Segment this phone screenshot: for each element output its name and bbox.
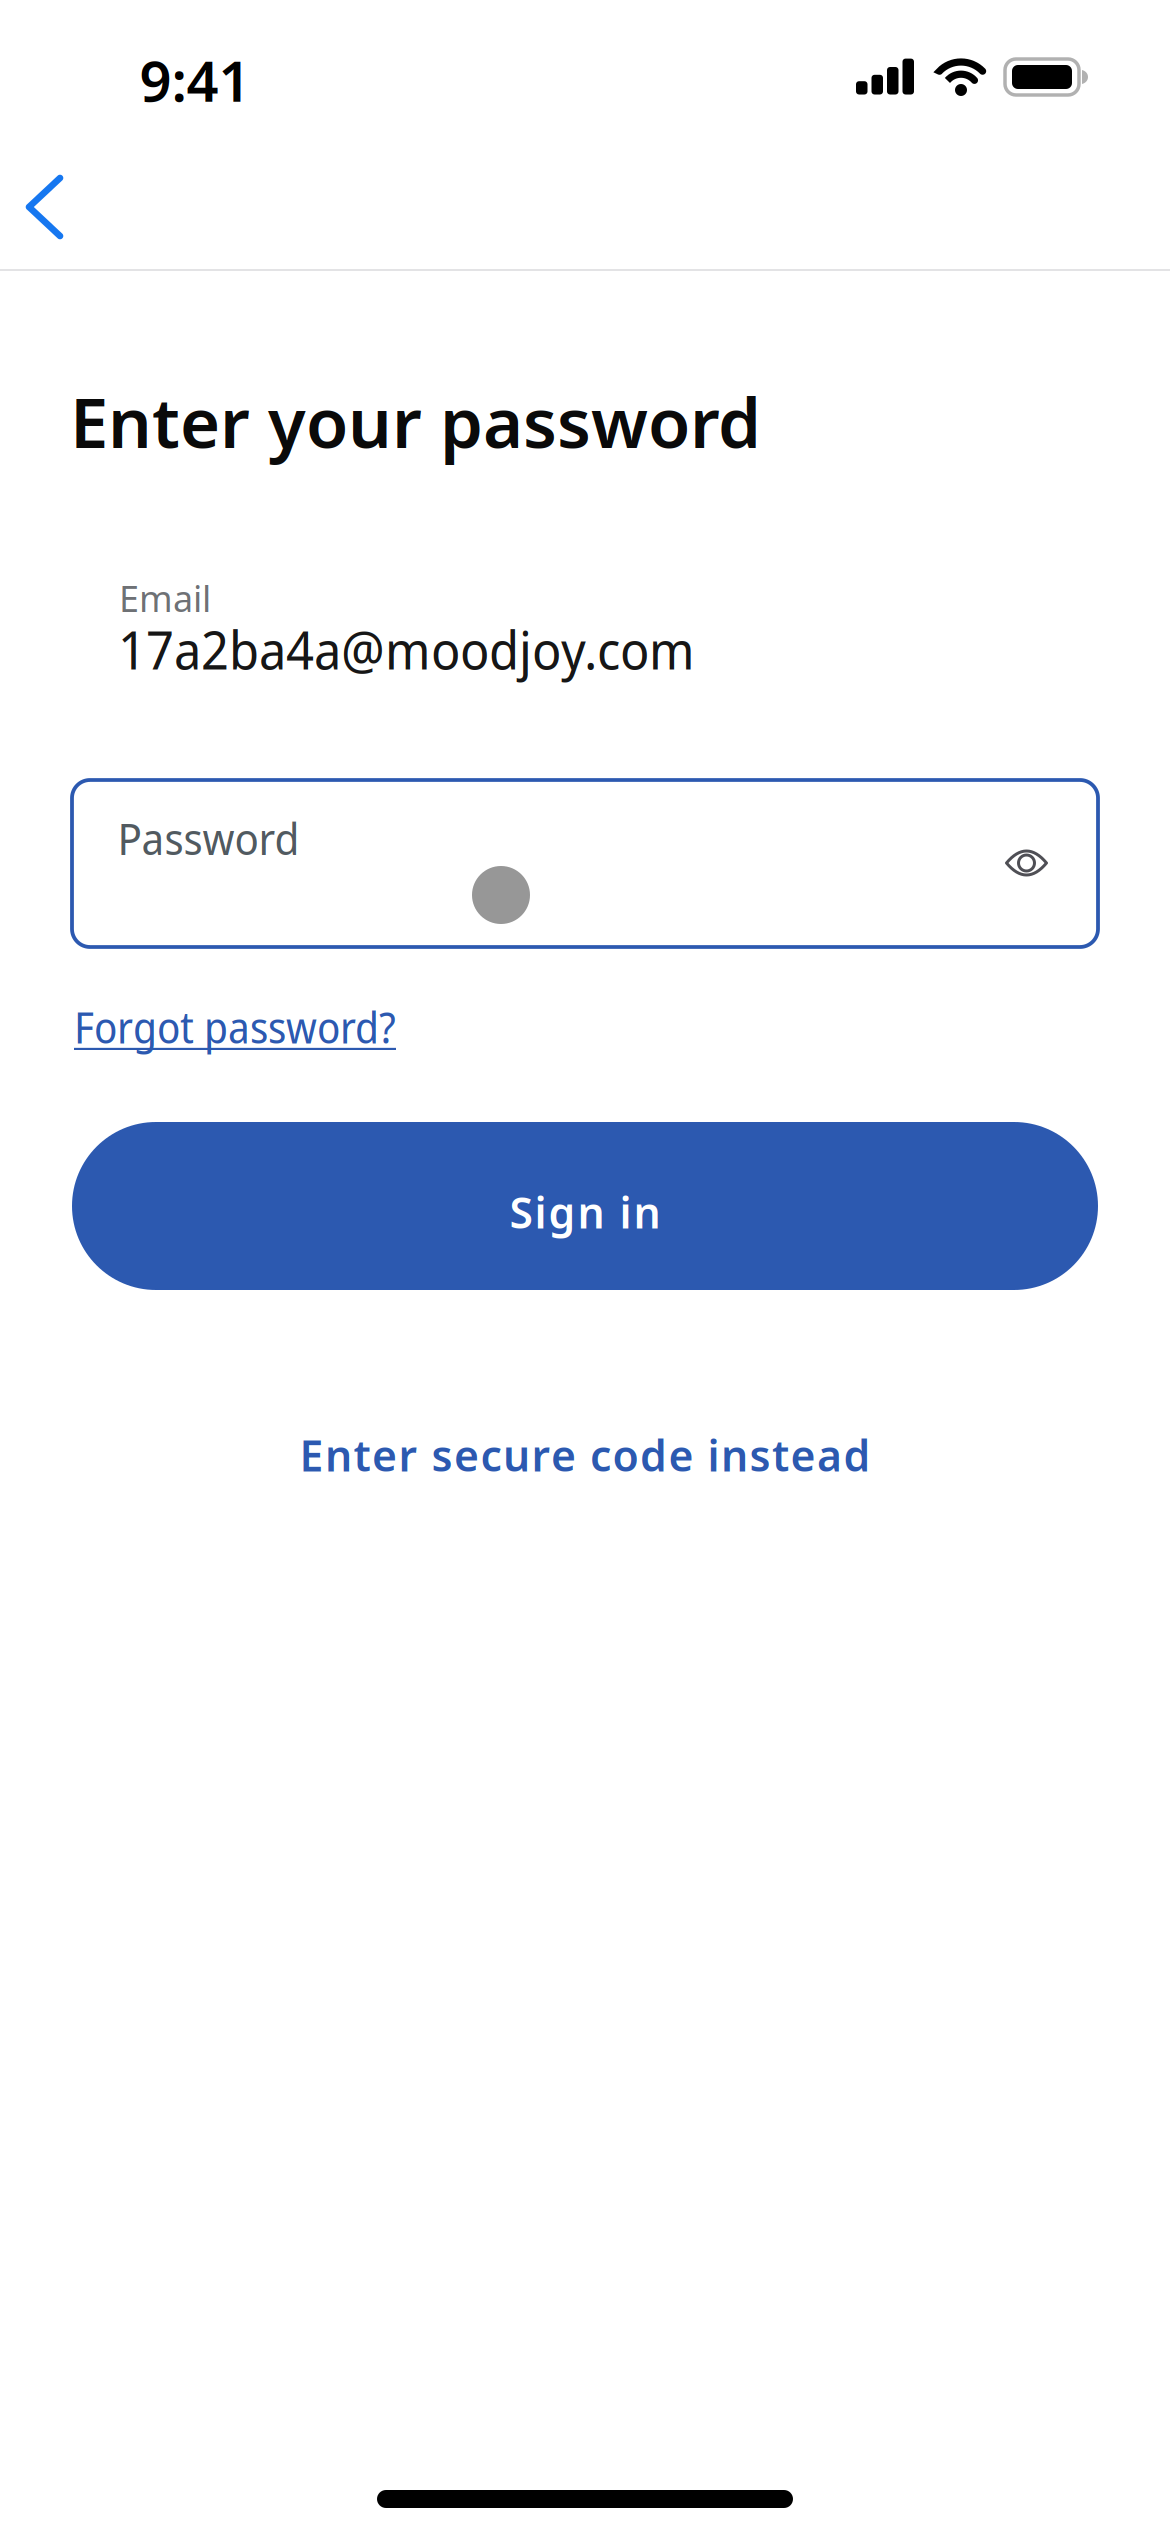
staticText: Enter your password — [70, 374, 761, 468]
button[interactable]: Forgot password? — [74, 997, 396, 1056]
staticText: Sign in — [509, 1183, 660, 1241]
button[interactable]: Show password — [985, 828, 1068, 898]
staticText: Email — [119, 573, 211, 622]
button[interactable]: Back — [0, 0, 92, 260]
staticText: 17a2ba4a@moodjoy.com — [118, 614, 695, 685]
staticText: Forgot password? — [74, 997, 396, 1056]
button[interactable]: Sign in — [72, 1122, 1098, 1290]
button[interactable]: Password — [72, 780, 1098, 947]
staticText: Enter secure code instead — [299, 1426, 870, 1484]
staticText: Password — [117, 809, 299, 868]
button[interactable]: Enter secure code instead — [0, 1426, 1170, 1484]
staticText: 9:41 — [139, 42, 250, 118]
